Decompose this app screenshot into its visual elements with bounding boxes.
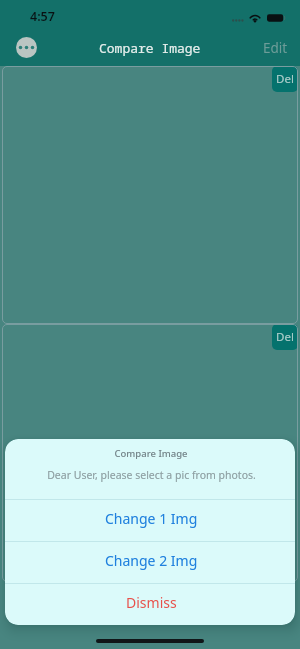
staticText: Change 1 Img	[105, 509, 198, 528]
button[interactable]: Change 2 Img	[5, 542, 295, 583]
staticText: Del	[276, 329, 294, 345]
button[interactable]: More options	[16, 37, 37, 58]
staticText: Del	[276, 71, 294, 87]
staticText: Compare Image	[114, 447, 188, 460]
staticText: Edit	[263, 39, 288, 57]
staticText: Dear User, please select a pic from phot…	[47, 468, 256, 482]
button[interactable]: Change 1 Img	[5, 500, 295, 541]
button[interactable]: Edit	[257, 35, 294, 61]
button[interactable]: Del	[272, 324, 298, 350]
button[interactable]: Del	[272, 66, 298, 92]
staticText: Change 2 Img	[105, 551, 198, 570]
staticText: Dismiss	[126, 593, 177, 612]
staticText: 4:57	[30, 8, 55, 25]
button[interactable]: Dismiss	[5, 584, 295, 625]
staticText: Compare Image	[99, 39, 201, 57]
